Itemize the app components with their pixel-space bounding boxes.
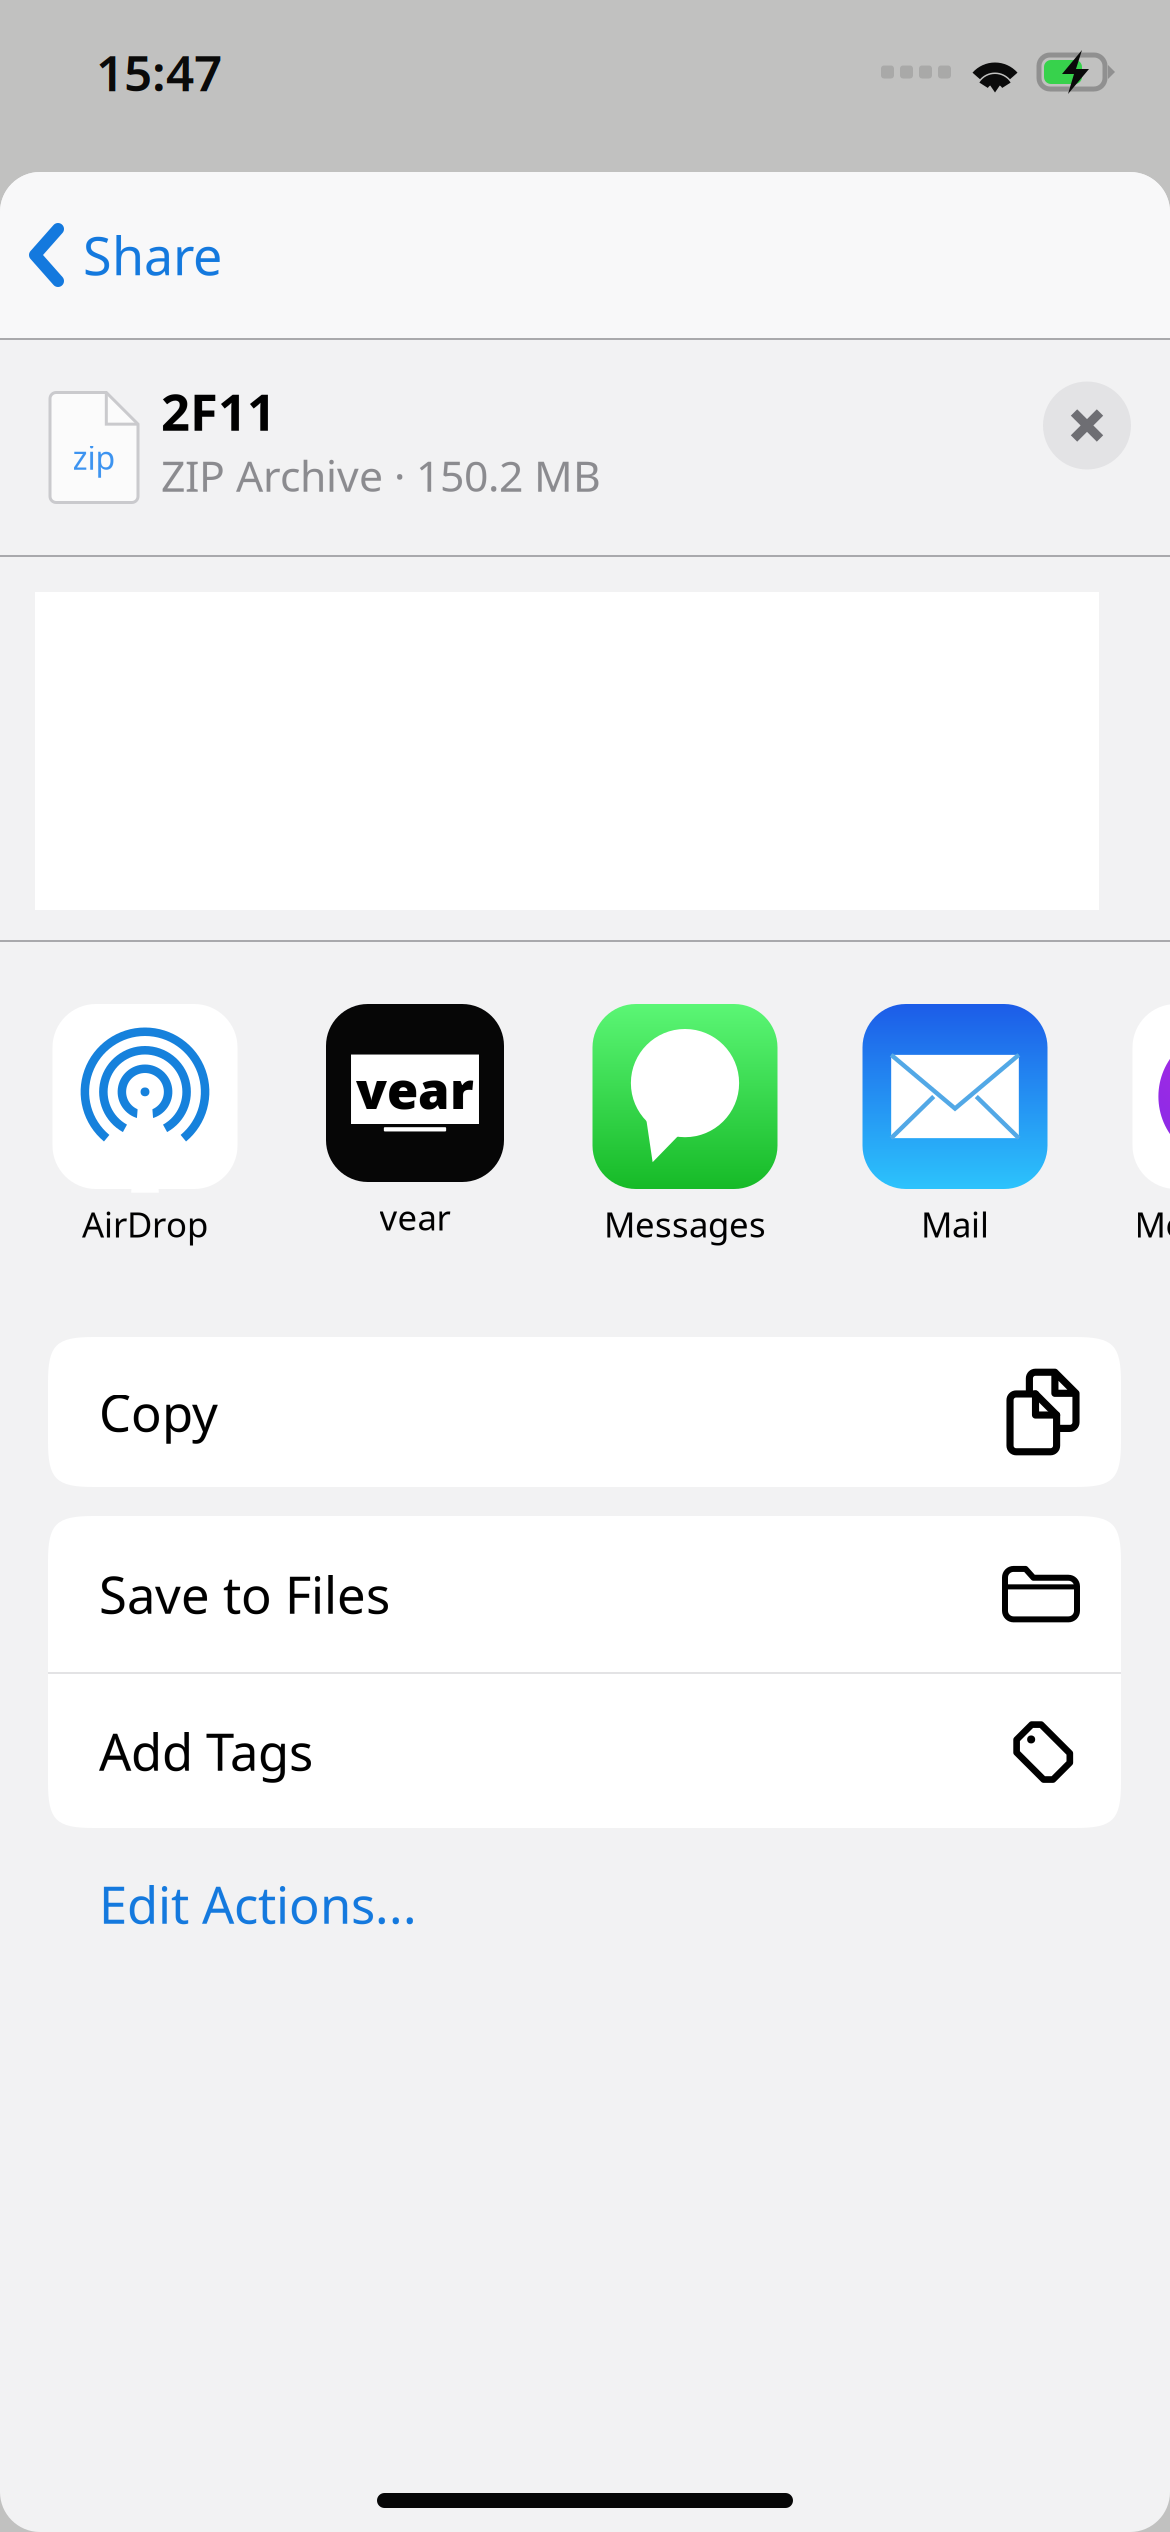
staticText: 15:47 bbox=[96, 39, 222, 105]
staticText: vear bbox=[379, 1194, 450, 1240]
staticText: zip bbox=[72, 436, 115, 479]
button[interactable]: Messenger bbox=[1090, 1004, 1170, 1284]
staticText: Share bbox=[83, 220, 222, 290]
staticText: Copy bbox=[99, 1378, 218, 1446]
button[interactable]: Mail bbox=[820, 1004, 1090, 1284]
staticText: Messages bbox=[604, 1201, 766, 1247]
button[interactable]: vear bbox=[280, 1004, 550, 1284]
staticText: 2F11 bbox=[161, 377, 276, 445]
button[interactable]: Save to Files bbox=[48, 1516, 1121, 1672]
staticText: Mail bbox=[921, 1201, 989, 1247]
staticText: AirDrop bbox=[82, 1201, 208, 1247]
staticText: ZIP Archive · 150.2 MB bbox=[161, 447, 601, 503]
staticText: Save to Files bbox=[99, 1560, 390, 1628]
staticText: Add Tags bbox=[99, 1717, 313, 1785]
staticText: Edit Actions... bbox=[99, 1870, 417, 1938]
button[interactable]: Copy bbox=[48, 1337, 1121, 1487]
button[interactable]: Add Tags bbox=[48, 1674, 1121, 1828]
staticText: Messenger bbox=[1134, 1201, 1170, 1247]
button[interactable]: Edit Actions... bbox=[48, 1854, 1121, 1954]
staticText: vear bbox=[356, 1056, 474, 1123]
button[interactable]: Share bbox=[0, 172, 1170, 338]
button[interactable]: AirDrop bbox=[10, 1004, 280, 1284]
button[interactable]: Messages bbox=[550, 1004, 820, 1284]
button[interactable]: Remove attachment bbox=[1043, 381, 1131, 469]
